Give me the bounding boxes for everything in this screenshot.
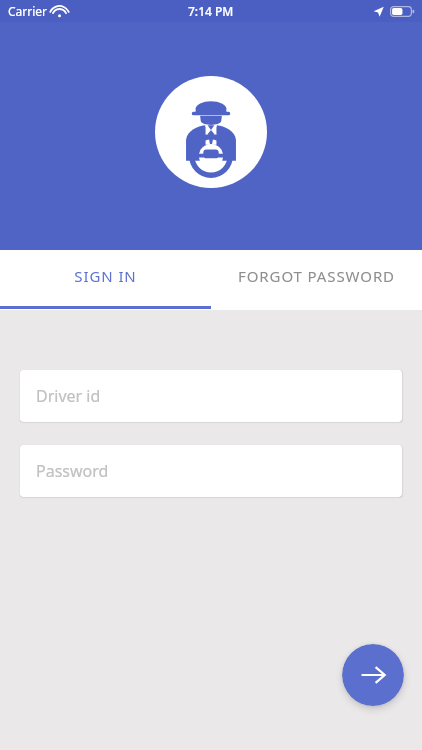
- staticText: Driver id: [36, 385, 101, 407]
- staticText: Carrier: [8, 3, 48, 19]
- other: Driver avatar: [179, 100, 243, 164]
- button[interactable]: SIGN IN: [0, 250, 211, 310]
- button[interactable]: Driver id: [20, 370, 402, 422]
- staticText: Password: [36, 460, 109, 482]
- button[interactable]: FORGOT PASSWORD: [211, 250, 422, 310]
- staticText: FORGOT PASSWORD: [238, 266, 395, 286]
- button[interactable]: Password: [20, 445, 402, 497]
- staticText: 7:14 PM: [188, 3, 234, 19]
- button[interactable]: Sign in: [342, 644, 404, 706]
- staticText: SIGN IN: [74, 266, 137, 286]
